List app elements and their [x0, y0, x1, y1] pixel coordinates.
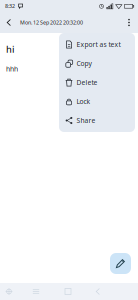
button[interactable]: New note — [110, 253, 131, 274]
staticText: Share — [76, 116, 95, 125]
button[interactable]: Copy — [59, 54, 135, 73]
button[interactable]: Delete — [59, 73, 135, 92]
button[interactable]: More options — [120, 12, 138, 33]
staticText: Export as text — [76, 40, 120, 49]
button[interactable]: Export as text — [59, 35, 135, 54]
staticText: 8:32 — [5, 2, 15, 10]
button[interactable]: Recent apps — [27, 283, 45, 300]
staticText: Delete — [76, 78, 97, 87]
staticText: Mon. 12 Sep 2022 20:32:00 — [20, 19, 83, 26]
staticText: hi — [6, 43, 15, 55]
button[interactable]: Home — [59, 283, 77, 300]
button[interactable]: Back — [89, 283, 107, 300]
staticText: Lock — [76, 97, 90, 106]
button[interactable]: Back — [0, 12, 18, 33]
button[interactable]: Lock — [59, 92, 135, 111]
staticText: hhh — [6, 64, 18, 73]
staticText: Copy — [76, 59, 91, 68]
button[interactable]: Assistant — [0, 283, 18, 300]
button[interactable]: Share — [59, 111, 135, 130]
